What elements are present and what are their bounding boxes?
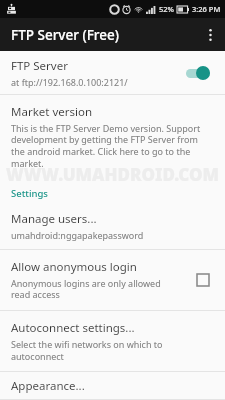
staticText: 3:26 PM [192, 4, 221, 14]
staticText: Market version [11, 104, 93, 120]
button[interactable]: Market version [0, 95, 225, 179]
staticText: FTP Server [11, 58, 68, 74]
button[interactable]: Appearance... [0, 372, 225, 399]
staticText: WWW.UMAHDROID.COM [0, 163, 225, 186]
button[interactable]: Allow anonymous login [0, 250, 225, 310]
staticText: Appearance... [11, 378, 85, 394]
staticText: Select the wifi networks on which to aut… [11, 338, 214, 362]
staticText: This is the FTP Server Demo version. Sup… [11, 122, 214, 170]
staticText: umahdroid:nggapakepassword [11, 229, 144, 241]
staticText: Autoconnect settings... [11, 320, 135, 336]
button[interactable]: Allow anonymous login checkbox [192, 269, 214, 291]
staticText: Settings [11, 187, 48, 200]
button[interactable]: Autoconnect settings... [0, 311, 225, 371]
staticText: 52% [159, 4, 174, 14]
button[interactable]: Manage users... [0, 208, 225, 249]
button[interactable]: Toggle FTP Server [184, 63, 214, 83]
button[interactable]: FTP Server [0, 51, 225, 94]
staticText: at ftp://192.168.0.100:2121/ [11, 76, 128, 88]
staticText: Allow anonymous login [11, 259, 137, 275]
staticText: Manage users... [11, 211, 97, 227]
staticText: Anonymous logins are only allowed read a… [11, 277, 161, 301]
button[interactable]: More options [195, 18, 225, 51]
staticText: FTP Server (Free) [11, 26, 119, 44]
